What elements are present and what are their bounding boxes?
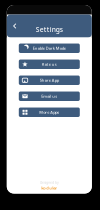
- button[interactable]: Rate us: [19, 59, 80, 69]
- staticText: Settings: [36, 25, 63, 34]
- staticText: Rate us: [42, 62, 57, 67]
- staticText: More Apps: [39, 110, 59, 115]
- staticText: Enable Dark Mode: [33, 46, 66, 51]
- staticText: Email us: [41, 94, 57, 99]
- staticText: Designed by: [40, 181, 58, 184]
- button[interactable]: Enable Dark Mode: [19, 43, 80, 53]
- staticText: Share App: [40, 78, 59, 83]
- button[interactable]: Back: [10, 21, 19, 30]
- staticText: kodular: [41, 185, 57, 190]
- button[interactable]: More Apps: [19, 107, 80, 117]
- button[interactable]: Share App: [19, 75, 80, 85]
- button[interactable]: Email us: [19, 91, 80, 101]
